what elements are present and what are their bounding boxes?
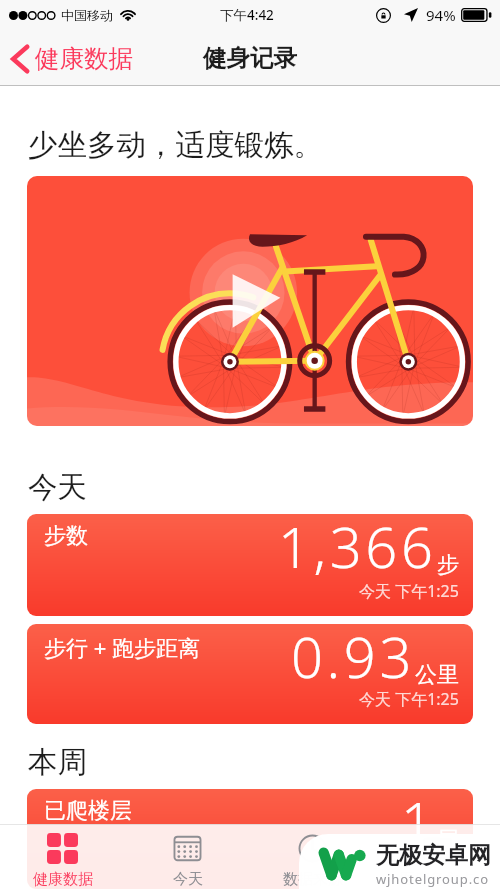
staticText: 今天 下午1:25 (359, 688, 459, 710)
staticText: 健康数据 (35, 43, 133, 74)
staticText: 今天 (28, 469, 87, 506)
button[interactable]: 步数 (27, 514, 473, 616)
button[interactable]: 步行 + 跑步距离 (27, 624, 473, 724)
staticText: 1,366 (278, 514, 437, 584)
button[interactable]: Play workout video (27, 176, 473, 426)
button[interactable]: 健康数据 (0, 824, 125, 889)
staticText: 今天 (173, 870, 203, 889)
staticText: 中国移动 (61, 7, 113, 23)
button[interactable]: 医疗急救卡 (375, 824, 500, 889)
staticText: 1 (401, 789, 437, 859)
staticText: 已爬楼层 (44, 797, 132, 825)
staticText: 94% (426, 5, 456, 25)
staticText: 今天 下午1:25 (359, 580, 459, 602)
button[interactable]: 今天 (125, 824, 250, 889)
staticText: 医疗急救卡 (400, 870, 475, 889)
staticText: 今天 下午1:25 (359, 853, 459, 875)
staticText: wjhotelgroup.com (376, 870, 500, 889)
staticText: 0.93 (291, 624, 415, 694)
staticText: 健身记录 (203, 43, 297, 73)
staticText: 步 (437, 551, 459, 579)
staticText: 本周 (28, 744, 87, 781)
button[interactable]: 数据来源 (250, 824, 375, 889)
button[interactable]: 已爬楼层 (27, 789, 473, 889)
staticText: 层 (437, 826, 459, 854)
staticText: 无极安卓网 (376, 841, 491, 870)
staticText: 数据来源 (283, 870, 343, 889)
staticText: 少坐多动，适度锻炼。 (28, 127, 323, 164)
staticText: 下午4:42 (220, 6, 274, 24)
staticText: 步数 (44, 522, 88, 550)
button[interactable]: 健康数据 (10, 43, 133, 74)
staticText: 公里 (415, 661, 459, 689)
staticText: 健康数据 (33, 870, 93, 889)
staticText: 步行 + 跑步距离 (44, 632, 201, 662)
